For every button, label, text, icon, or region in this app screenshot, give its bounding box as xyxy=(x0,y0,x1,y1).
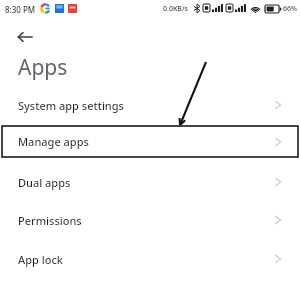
button[interactable]: Manage apps xyxy=(0,126,300,157)
staticText: App lock xyxy=(18,252,63,267)
staticText: 66% xyxy=(283,4,297,14)
staticText: 8:30 PM xyxy=(5,4,36,15)
staticText: 0.0KB/s xyxy=(163,4,189,14)
button[interactable]: Permissions xyxy=(0,205,300,235)
staticText: Manage apps xyxy=(18,134,89,149)
button[interactable]: System app settings xyxy=(0,90,300,120)
staticText: Apps xyxy=(18,53,68,82)
staticText: System app settings xyxy=(18,98,124,113)
staticText: Dual apps xyxy=(18,175,71,190)
button[interactable]: Back xyxy=(10,22,40,52)
staticText: Permissions xyxy=(18,213,82,228)
button[interactable]: App lock xyxy=(0,244,300,274)
button[interactable]: Dual apps xyxy=(0,167,300,197)
